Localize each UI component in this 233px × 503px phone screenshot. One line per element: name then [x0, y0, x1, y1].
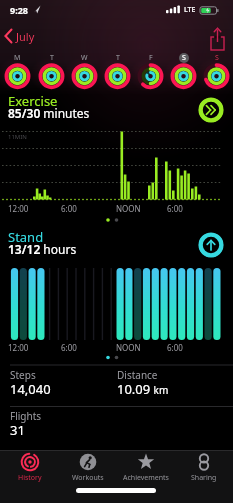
button[interactable]: History — [0, 451, 59, 503]
button[interactable] — [198, 232, 224, 258]
staticText: S — [215, 53, 219, 63]
staticText: Stand — [8, 228, 44, 246]
staticText: Workouts — [72, 473, 104, 483]
staticText: Exercise — [8, 92, 58, 110]
staticText: NOON — [116, 203, 141, 214]
staticText: Steps — [10, 368, 36, 382]
button[interactable]: S — [167, 52, 200, 90]
staticText: 6:00 — [61, 203, 77, 214]
button[interactable]: M — [0, 52, 34, 90]
staticText: 13/12 hours — [8, 241, 77, 257]
button[interactable] — [206, 25, 230, 51]
button[interactable]: W — [68, 52, 101, 90]
button[interactable] — [198, 97, 224, 123]
staticText: M — [14, 53, 21, 63]
staticText: F — [149, 53, 153, 63]
staticText: Distance — [117, 368, 158, 382]
staticText: 12:00 — [8, 203, 29, 214]
staticText: 14,040 — [10, 380, 51, 398]
button[interactable]: F — [134, 52, 167, 90]
button[interactable]: T — [101, 52, 134, 90]
staticText: 9:28 — [10, 4, 28, 16]
button[interactable]: Workouts — [59, 451, 117, 503]
staticText: NOON — [116, 342, 141, 353]
staticText: S — [182, 53, 186, 63]
staticText: 6:00 — [61, 342, 77, 353]
staticText: 6:00 — [167, 203, 183, 214]
staticText: Sharing — [191, 473, 217, 483]
button[interactable]: S — [200, 52, 233, 90]
staticText: 10.09 km — [117, 380, 169, 398]
staticText: W — [81, 53, 88, 63]
staticText: 11MIN — [8, 133, 27, 141]
staticText: 6:00 — [167, 342, 183, 353]
staticText: History — [18, 473, 42, 483]
staticText: July — [16, 29, 35, 44]
button[interactable]: T — [34, 52, 68, 90]
staticText: T — [116, 53, 120, 63]
staticText: T — [50, 53, 54, 63]
staticText: 85/30 minutes — [8, 105, 90, 121]
button[interactable]: July — [2, 27, 35, 45]
staticText: LTE — [184, 5, 196, 15]
button[interactable]: Achievements — [117, 451, 175, 503]
button[interactable]: Sharing — [175, 451, 233, 503]
staticText: 31 — [10, 421, 25, 439]
staticText: 12:00 — [8, 342, 29, 353]
staticText: Achievements — [123, 473, 169, 483]
staticText: Flights — [10, 409, 42, 423]
